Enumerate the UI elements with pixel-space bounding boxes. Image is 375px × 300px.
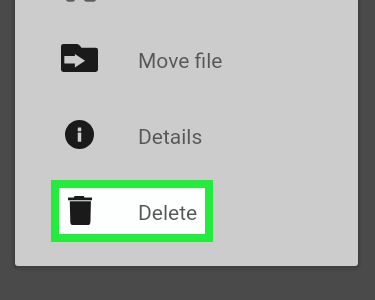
staticText: Move file bbox=[138, 49, 223, 74]
staticText: Details bbox=[138, 125, 203, 150]
button[interactable]: Share bbox=[15, 0, 358, 20]
button[interactable]: Move file bbox=[15, 20, 358, 96]
button[interactable]: Delete bbox=[15, 172, 358, 248]
staticText: Delete bbox=[138, 201, 198, 226]
button[interactable]: Details bbox=[15, 96, 358, 172]
